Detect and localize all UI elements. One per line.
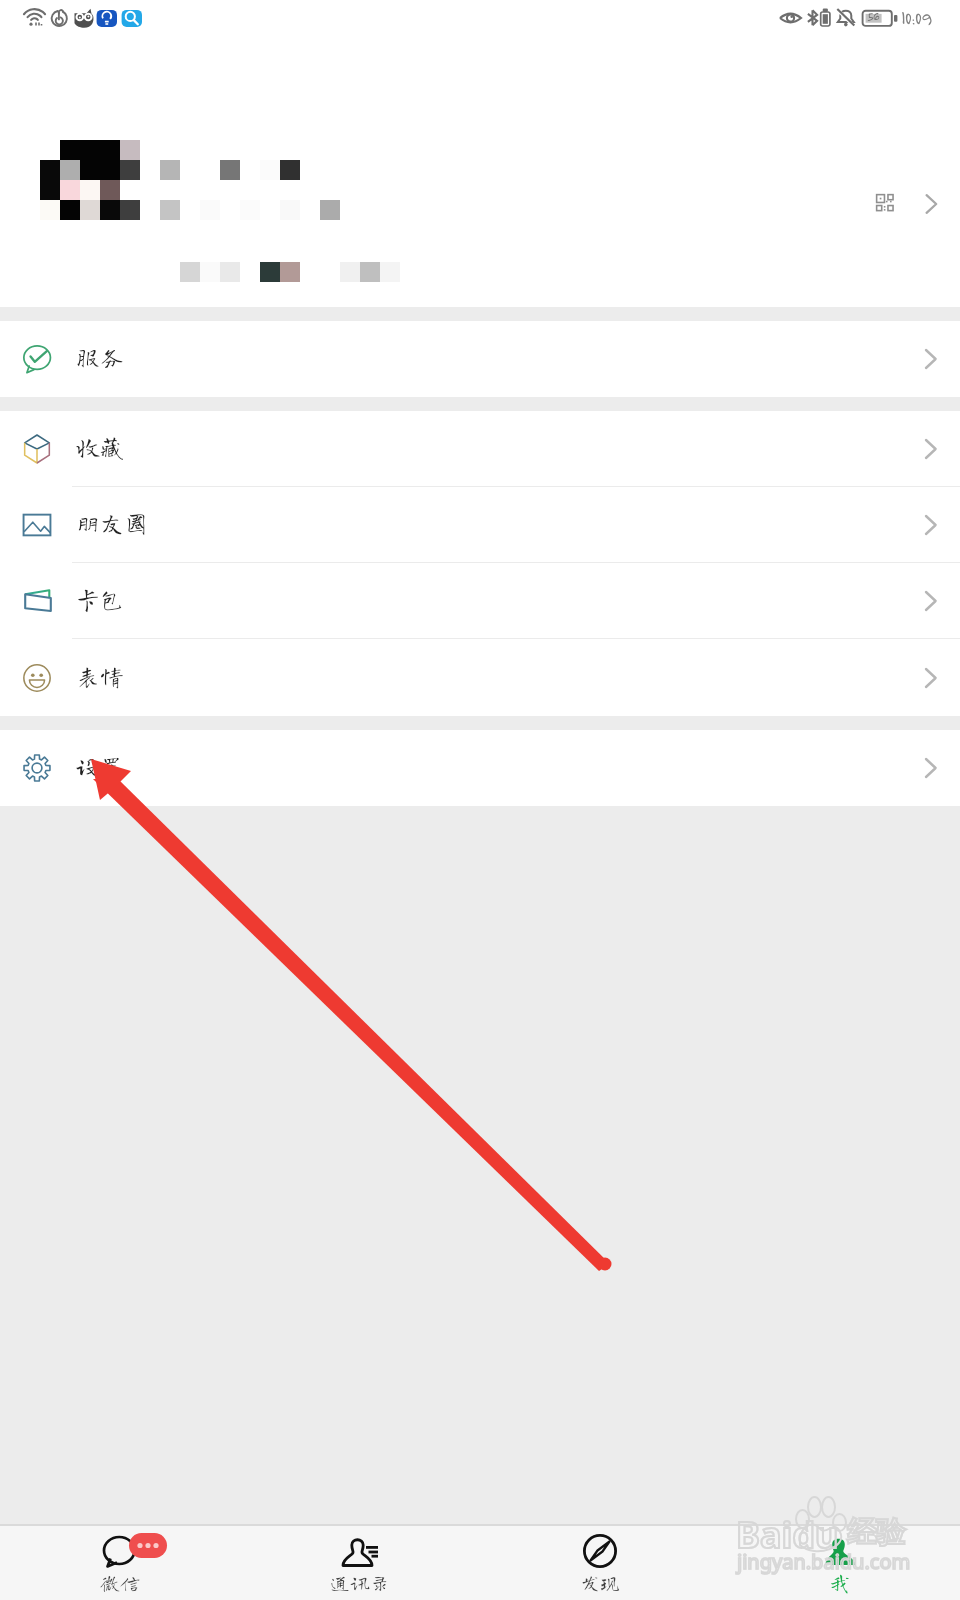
- button[interactable]: 朋友圈: [0, 487, 960, 563]
- staticText: 表情: [76, 664, 124, 688]
- button[interactable]: 服务: [0, 321, 960, 397]
- staticText: jingyan.baidu.com: [737, 1548, 911, 1575]
- button[interactable]: Profile: [0, 0, 960, 307]
- button[interactable]: 收藏: [0, 411, 960, 487]
- staticText: 10:09: [901, 6, 932, 29]
- staticText: 朋友圈: [76, 511, 148, 535]
- staticText: 设置: [76, 754, 124, 778]
- staticText: 收藏: [76, 435, 124, 459]
- staticText: 我: [830, 1572, 850, 1592]
- staticText: 微信: [100, 1572, 140, 1592]
- staticText: 56: [867, 9, 879, 24]
- button[interactable]: 发现: [480, 1526, 720, 1600]
- button[interactable]: 我: [720, 1526, 960, 1600]
- button[interactable]: My QR code: [876, 194, 894, 212]
- button[interactable]: 表情: [0, 639, 960, 716]
- button[interactable]: 卡包: [0, 563, 960, 639]
- staticText: Baidu: [736, 1510, 839, 1559]
- button[interactable]: 设置: [0, 730, 960, 806]
- button[interactable]: 微信: [0, 1526, 240, 1600]
- button[interactable]: 通讯录: [240, 1526, 480, 1600]
- staticText: 服务: [76, 345, 124, 369]
- staticText: 通讯录: [330, 1572, 390, 1592]
- staticText: 经验: [847, 1514, 905, 1551]
- staticText: 卡包: [76, 587, 124, 611]
- staticText: 发现: [580, 1572, 620, 1592]
